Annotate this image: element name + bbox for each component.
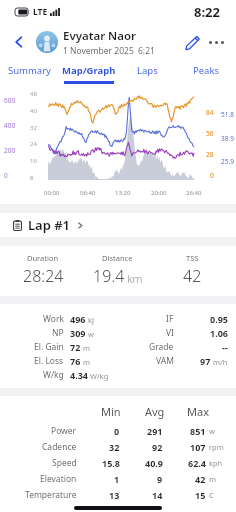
staticText: 8:22 <box>194 3 220 21</box>
staticText: 291 <box>147 425 163 437</box>
button[interactable]: More options <box>204 30 228 54</box>
staticText: w <box>88 329 94 339</box>
staticText: 6:21 <box>138 45 155 57</box>
staticText: 309 <box>70 327 86 339</box>
staticText: 32 <box>109 441 120 453</box>
staticText: 1.06 <box>210 327 228 339</box>
staticText: Laps <box>137 64 158 77</box>
staticText: TSS <box>186 253 199 263</box>
staticText: El. Gain <box>34 341 64 353</box>
staticText: Temperature <box>25 489 77 501</box>
staticText: 51.8 <box>221 110 234 119</box>
staticText: Evyatar Naor <box>63 28 137 44</box>
staticText: -- <box>222 341 228 353</box>
staticText: Summary <box>8 64 51 77</box>
staticText: 25.9 <box>221 157 234 166</box>
staticText: 97 <box>200 355 211 367</box>
staticText: 4.34 <box>70 369 88 381</box>
staticText: 19.4 <box>93 265 125 287</box>
staticText: 9 <box>157 473 163 485</box>
button[interactable]: Distance <box>80 253 155 287</box>
button[interactable]: Map/Graph <box>59 60 118 86</box>
staticText: Min <box>101 404 121 419</box>
staticText: m/h <box>213 357 228 367</box>
staticText: 16 <box>30 157 37 165</box>
staticText: W/kg <box>43 369 64 381</box>
button[interactable]: Back <box>8 31 30 53</box>
staticText: Max <box>187 404 209 419</box>
staticText: 20:00 <box>151 189 167 197</box>
staticText: m <box>83 343 91 353</box>
staticText: m <box>83 357 91 367</box>
staticText: VAM <box>156 355 174 367</box>
staticText: kph <box>209 458 223 468</box>
staticText: Lap #1 <box>28 216 71 234</box>
staticText: Grade <box>149 341 174 353</box>
staticText: Distance <box>102 253 133 263</box>
staticText: 38.9 <box>221 134 234 143</box>
staticText: Speed <box>52 457 77 469</box>
staticText: 1 <box>114 473 120 485</box>
staticText: Peaks <box>193 64 220 77</box>
staticText: 400 <box>4 121 16 130</box>
staticText: 200 <box>4 146 16 155</box>
staticText: NP <box>52 327 64 339</box>
staticText: 0 <box>210 171 214 180</box>
staticText: 42 <box>183 265 202 287</box>
button[interactable]: Lap #1 <box>0 213 236 237</box>
staticText: 15.8 <box>102 457 120 469</box>
staticText: 24 <box>30 140 37 148</box>
staticText: 8 <box>30 174 34 182</box>
staticText: Elevation <box>40 473 77 485</box>
staticText: 0.95 <box>210 313 228 325</box>
staticText: 42 <box>195 473 206 485</box>
staticText: IF <box>166 313 174 325</box>
staticText: 32 <box>30 124 37 132</box>
staticText: Avg <box>145 404 165 419</box>
staticText: 14 <box>152 489 163 501</box>
staticText: m <box>209 474 217 484</box>
staticText: C <box>209 490 214 500</box>
staticText: LTE <box>33 6 48 18</box>
staticText: 56 <box>206 129 214 138</box>
staticText: Duration <box>27 253 59 263</box>
button[interactable]: Summary <box>0 60 59 86</box>
staticText: 13 <box>109 489 120 501</box>
staticText: 851 <box>190 425 206 437</box>
staticText: Map/Graph <box>62 64 116 77</box>
button[interactable]: Edit <box>180 30 204 54</box>
staticText: 62.4 <box>188 457 206 469</box>
staticText: 26:40 <box>186 189 202 197</box>
staticText: 13:20 <box>115 189 131 197</box>
staticText: 0 <box>114 425 120 437</box>
staticText: 92 <box>152 441 163 453</box>
staticText: 00:00 <box>44 189 60 197</box>
staticText: 72 <box>70 341 81 353</box>
staticText: 600 <box>4 96 16 105</box>
staticText: 84 <box>206 108 214 117</box>
staticText: 0 <box>4 171 8 180</box>
staticText: 15 <box>195 489 206 501</box>
staticText: 107 <box>190 441 206 453</box>
staticText: 28:24 <box>23 265 64 287</box>
staticText: 76 <box>70 355 81 367</box>
staticText: VI <box>166 327 174 339</box>
staticText: Cadence <box>42 441 77 453</box>
staticText: Work <box>43 313 64 325</box>
staticText: El. Loss <box>34 355 64 367</box>
staticText: w <box>209 426 215 436</box>
button[interactable]: TSS <box>155 253 230 287</box>
staticText: 48 <box>30 90 37 98</box>
staticText: 06:40 <box>80 189 96 197</box>
staticText: Power <box>51 425 77 437</box>
button[interactable]: Laps <box>118 60 177 86</box>
staticText: 1 November 2025 <box>63 45 134 57</box>
staticText: 40.9 <box>145 457 163 469</box>
button[interactable]: Duration <box>6 253 80 287</box>
staticText: 496 <box>70 313 86 325</box>
staticText: km <box>127 271 143 286</box>
staticText: 28 <box>206 150 214 159</box>
staticText: W/kg <box>90 371 109 381</box>
staticText: 40 <box>30 107 37 115</box>
button[interactable]: Peaks <box>177 60 236 86</box>
